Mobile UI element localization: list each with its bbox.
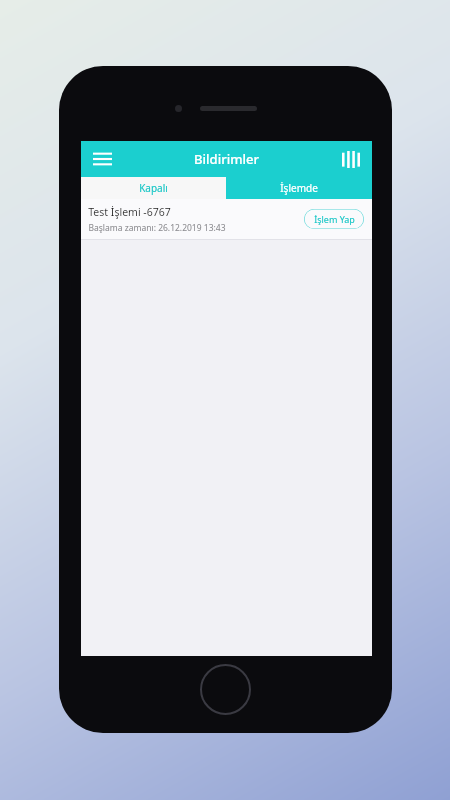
button[interactable]: App logo bbox=[338, 146, 364, 172]
staticText: Başlama zamanı: 26.12.2019 13:43 bbox=[88, 222, 226, 234]
staticText: Bildirimler bbox=[194, 150, 259, 168]
button[interactable]: Kapalı bbox=[81, 177, 226, 199]
staticText: İşlemde bbox=[280, 181, 318, 195]
button[interactable]: Menu bbox=[88, 145, 116, 173]
staticText: Test İşlemi -6767 bbox=[88, 205, 171, 219]
staticText: İşlem Yap bbox=[314, 213, 355, 225]
button[interactable]: İşlem Yap bbox=[304, 209, 364, 229]
button[interactable]: İşlemde bbox=[226, 177, 372, 199]
staticText: Kapalı bbox=[139, 181, 168, 195]
button[interactable]: Test İşlemi -6767 bbox=[81, 199, 372, 239]
